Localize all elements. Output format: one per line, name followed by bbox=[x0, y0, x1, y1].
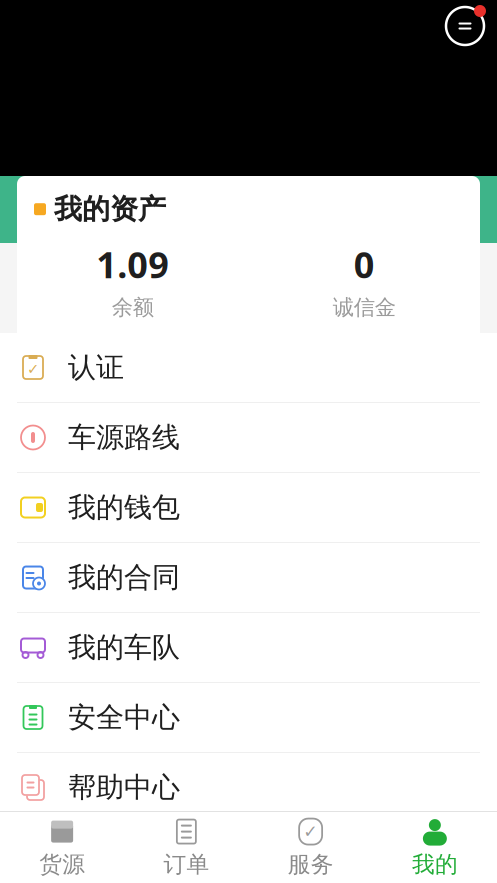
staticText: 认证 bbox=[68, 350, 124, 385]
button[interactable]: 我的合同 bbox=[0, 543, 497, 612]
button[interactable]: ✓ bbox=[248, 812, 373, 883]
button[interactable]: 我的钱包 bbox=[0, 473, 497, 542]
button[interactable]: 帮助中心 bbox=[0, 753, 497, 822]
staticText: ★ bbox=[154, 182, 177, 211]
staticText: 货源 bbox=[39, 851, 85, 878]
staticText: 我的合同 bbox=[68, 560, 180, 595]
staticText: 余额 bbox=[112, 294, 154, 320]
staticText: 1.09 bbox=[96, 240, 169, 288]
staticText: 帮助中心 bbox=[68, 770, 180, 805]
staticText: ★ bbox=[126, 182, 149, 211]
button[interactable]: Chat assistant bbox=[443, 4, 487, 48]
staticText: 诚信金 bbox=[333, 294, 396, 320]
staticText: 服务 bbox=[288, 851, 334, 878]
button[interactable]: 1.09 bbox=[17, 240, 248, 320]
staticText: 我的车队 bbox=[68, 630, 180, 665]
button[interactable]: 货源 bbox=[0, 812, 124, 883]
staticText: 0 bbox=[354, 240, 375, 288]
staticText: 我的钱包 bbox=[68, 490, 180, 525]
button[interactable]: 安全中心 bbox=[0, 683, 497, 752]
staticText: ✓ bbox=[27, 361, 39, 377]
staticText: 安全中心 bbox=[68, 700, 180, 735]
button[interactable]: 我的车队 bbox=[0, 613, 497, 682]
staticText: 我的资产 bbox=[54, 192, 166, 226]
staticText: 订单 bbox=[163, 851, 209, 878]
staticText: 车源路线 bbox=[68, 420, 180, 455]
button[interactable]: 订单 bbox=[124, 812, 248, 883]
staticText: 我的 bbox=[412, 851, 458, 878]
button[interactable]: 0 bbox=[248, 240, 480, 320]
button[interactable]: 车源路线 bbox=[0, 403, 497, 472]
button[interactable]: ✓ bbox=[0, 333, 497, 402]
staticText: ✓ bbox=[303, 822, 318, 841]
button[interactable]: 我的 bbox=[373, 812, 497, 883]
